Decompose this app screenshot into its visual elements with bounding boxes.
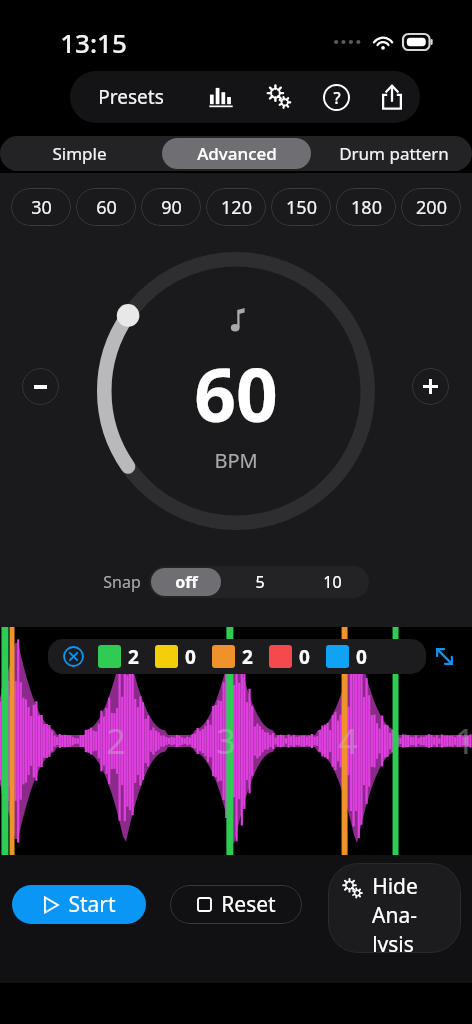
button[interactable]: Advanced [162, 138, 311, 169]
button[interactable]: Hide [340, 863, 451, 953]
staticText: 13:15 [60, 25, 127, 60]
staticText: lysis [372, 930, 414, 953]
button[interactable]: 0 [269, 639, 326, 674]
staticText: Advanced [197, 142, 277, 165]
button[interactable]: 60 [96, 251, 376, 531]
button[interactable]: 2 [212, 639, 269, 674]
staticText: Hide [372, 872, 418, 901]
staticText: ? [333, 87, 341, 109]
staticText: Reset [221, 890, 276, 919]
button[interactable]: Settings [250, 71, 308, 123]
button[interactable]: 120 [206, 188, 266, 226]
staticText: 1 [455, 718, 472, 764]
button[interactable]: 30 [11, 188, 71, 226]
staticText: 0 [185, 644, 196, 670]
button[interactable]: Expand analysis [429, 641, 459, 671]
staticText: Presets [98, 84, 164, 110]
button[interactable]: 150 [271, 188, 331, 226]
button[interactable]: Help [308, 71, 364, 123]
staticText: Simple [52, 142, 107, 165]
staticText: Ana- [372, 901, 417, 930]
staticText: 5 [255, 571, 265, 593]
staticText: 10 [323, 571, 342, 593]
button[interactable]: 60 [76, 188, 136, 226]
staticText: off [175, 571, 198, 593]
button[interactable]: Close analysis overlay [48, 639, 98, 674]
staticText: 90 [161, 195, 182, 220]
button[interactable]: 10 [296, 566, 369, 598]
staticText: 2 [128, 644, 139, 670]
button[interactable]: 0 [155, 639, 212, 674]
staticText: 3 [216, 718, 236, 764]
button[interactable]: off [151, 568, 221, 596]
staticText: 30 [31, 195, 52, 220]
staticText: 0 [356, 644, 367, 670]
button[interactable]: 2 [98, 639, 155, 674]
button[interactable]: 90 [141, 188, 201, 226]
staticText: Drum pattern [339, 142, 449, 165]
staticText: 60 [96, 195, 117, 220]
button[interactable]: Drum pattern [315, 136, 472, 171]
staticText: 120 [221, 195, 252, 220]
button[interactable]: Reset [170, 885, 302, 924]
button[interactable]: Share [364, 71, 420, 123]
staticText: 2 [106, 718, 126, 764]
staticText: 0 [299, 644, 310, 670]
staticText: 60 [194, 344, 278, 443]
button[interactable]: Decrease tempo [22, 368, 59, 405]
staticText: Snap [103, 571, 141, 593]
staticText: 180 [351, 195, 382, 220]
button[interactable]: 0 [326, 639, 383, 674]
staticText: 2 [242, 644, 253, 670]
staticText: 200 [416, 195, 447, 220]
staticText: BPM [214, 447, 258, 474]
staticText: Start [68, 890, 116, 919]
staticText: 150 [286, 195, 317, 220]
button[interactable]: Presets [70, 71, 192, 123]
button[interactable]: 200 [401, 188, 461, 226]
button[interactable]: Start [12, 885, 146, 924]
staticText: 4 [338, 718, 358, 764]
button[interactable]: Statistics [192, 71, 250, 123]
button[interactable]: Increase tempo [412, 368, 449, 405]
button[interactable]: Simple [0, 136, 158, 171]
button[interactable]: 180 [336, 188, 396, 226]
button[interactable]: 5 [223, 566, 296, 598]
